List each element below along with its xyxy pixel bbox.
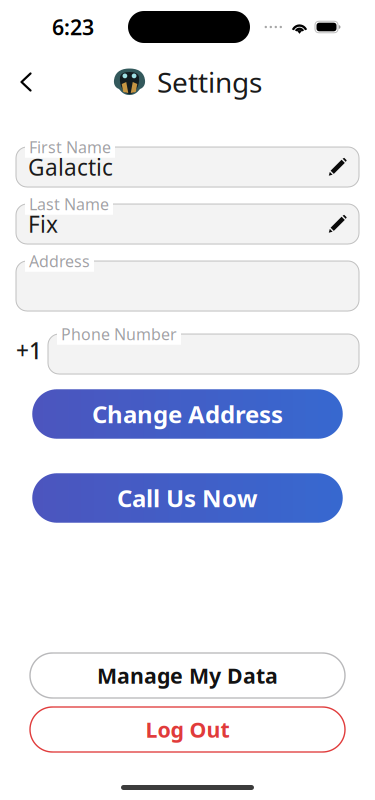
staticText: First Name — [29, 136, 111, 158]
staticText: +1 — [16, 335, 42, 365]
staticText: Call Us Now — [117, 482, 258, 514]
staticText: Settings — [157, 63, 262, 101]
staticText: Fix — [28, 209, 58, 239]
staticText: Last Name — [29, 193, 109, 215]
button[interactable]: Manage My Data — [30, 653, 345, 698]
button[interactable]: Call Us Now — [31, 472, 344, 524]
staticText: 6:23 — [52, 13, 94, 41]
staticText: Address — [29, 250, 90, 272]
staticText: Galactic — [28, 152, 113, 182]
staticText: Manage My Data — [97, 661, 278, 690]
staticText: Log Out — [145, 715, 229, 744]
button[interactable]: Log Out — [30, 707, 345, 752]
button[interactable]: Edit Last Name — [328, 214, 359, 233]
staticText: Change Address — [92, 398, 283, 430]
staticText: Phone Number — [61, 323, 177, 345]
button[interactable]: Change Address — [31, 388, 344, 440]
button[interactable]: Edit First Name — [328, 157, 359, 176]
button[interactable]: Back — [4, 60, 48, 104]
